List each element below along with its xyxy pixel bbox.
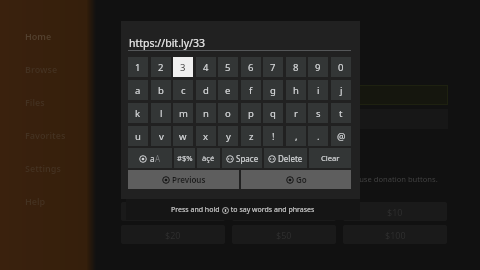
staticText: $50 (276, 229, 292, 241)
button[interactable]: , (286, 126, 306, 146)
button[interactable]: Home (25, 19, 85, 52)
button[interactable]: y (218, 126, 238, 146)
button[interactable]: $5 (232, 202, 336, 221)
button[interactable]: Clear (309, 148, 351, 168)
staticText: a (150, 153, 155, 164)
staticText: c (181, 84, 186, 97)
button[interactable]: j (331, 80, 351, 100)
button[interactable]: z (241, 126, 261, 146)
button[interactable]: 2 (151, 57, 171, 77)
button[interactable]: 4 (196, 57, 216, 77)
staticText: #$% (177, 153, 193, 163)
button[interactable]: $1 (121, 202, 225, 221)
button[interactable]: c (173, 80, 193, 100)
staticText: $100 (385, 229, 406, 241)
staticText: m (179, 107, 188, 120)
staticText: 3 (180, 61, 186, 74)
staticText: u (135, 130, 141, 143)
button[interactable]: h (286, 80, 306, 100)
staticText: h (293, 84, 299, 97)
staticText: àçé (202, 153, 215, 163)
button[interactable]: Space (222, 148, 262, 168)
button[interactable]: k (128, 103, 148, 123)
button[interactable]: https://bit.ly/33 (121, 85, 448, 105)
button[interactable]: Favorites (25, 118, 85, 151)
staticText: . (317, 130, 320, 143)
button[interactable]: a (128, 80, 148, 100)
staticText: q (270, 107, 276, 120)
button[interactable]: 6 (241, 57, 261, 77)
staticText: l (160, 107, 163, 120)
staticText: 1 (135, 61, 141, 74)
staticText: $5 (279, 206, 290, 218)
button[interactable]: e (218, 80, 238, 100)
button[interactable]: v (151, 126, 171, 146)
button[interactable]: 1 (128, 57, 148, 77)
button[interactable]: w (173, 126, 193, 146)
button[interactable]: x (196, 126, 216, 146)
button[interactable]: 9 (308, 57, 328, 77)
button[interactable]: #$% (174, 148, 195, 168)
button[interactable]: u (128, 126, 148, 146)
staticText: Files (25, 96, 45, 108)
staticText: Previous (172, 174, 206, 185)
staticText: w (179, 130, 187, 143)
staticText: , (295, 130, 298, 143)
staticText: r (294, 107, 298, 120)
staticText: https://bit.ly/33 (127, 89, 193, 101)
staticText: y (226, 130, 231, 143)
button[interactable]: Settings (25, 151, 85, 184)
button[interactable]: r (286, 103, 306, 123)
staticText: Settings (25, 162, 61, 174)
button[interactable]: o (218, 103, 238, 123)
button[interactable]: 7 (263, 57, 283, 77)
button[interactable]: t (331, 103, 351, 123)
button[interactable]: a (128, 148, 172, 168)
button[interactable]: ! (263, 126, 283, 146)
staticText: $1 (168, 206, 179, 218)
button[interactable]: . (308, 126, 328, 146)
staticText: b (158, 84, 164, 97)
button[interactable]: Go (241, 170, 351, 189)
staticText: 2 (158, 61, 164, 74)
button[interactable]: i (308, 80, 328, 100)
button[interactable]: p (241, 103, 261, 123)
button[interactable]: d (196, 80, 216, 100)
button[interactable]: s (308, 103, 328, 123)
staticText: j (340, 84, 343, 97)
staticText: t (339, 107, 343, 120)
button[interactable]: 5 (218, 57, 238, 77)
staticText: g (270, 84, 276, 97)
button[interactable]: f (241, 80, 261, 100)
button[interactable]: Previous (128, 170, 239, 189)
button[interactable]: n (196, 103, 216, 123)
staticText: a (135, 84, 141, 97)
staticText: z (249, 130, 254, 143)
staticText: If you want to support the further devel… (121, 174, 438, 184)
staticText: Help (25, 195, 46, 207)
button[interactable]: 0 (331, 57, 351, 77)
button[interactable]: 8 (286, 57, 306, 77)
button[interactable]: l (151, 103, 171, 123)
button[interactable]: 3 (173, 57, 193, 77)
button[interactable]: q (263, 103, 283, 123)
button[interactable]: Delete (264, 148, 307, 168)
button[interactable]: @ (331, 126, 351, 146)
staticText: @ (337, 130, 346, 143)
button[interactable]: àçé (197, 148, 220, 168)
staticText: 5 (225, 61, 231, 74)
button[interactable]: b (151, 80, 171, 100)
staticText: Favorites (25, 129, 66, 141)
button[interactable]: m (173, 103, 193, 123)
button[interactable]: g (263, 80, 283, 100)
staticText: Clear (321, 153, 340, 163)
staticText: $10 (387, 206, 403, 218)
button[interactable] (121, 109, 448, 129)
button[interactable]: Browse (25, 52, 85, 85)
